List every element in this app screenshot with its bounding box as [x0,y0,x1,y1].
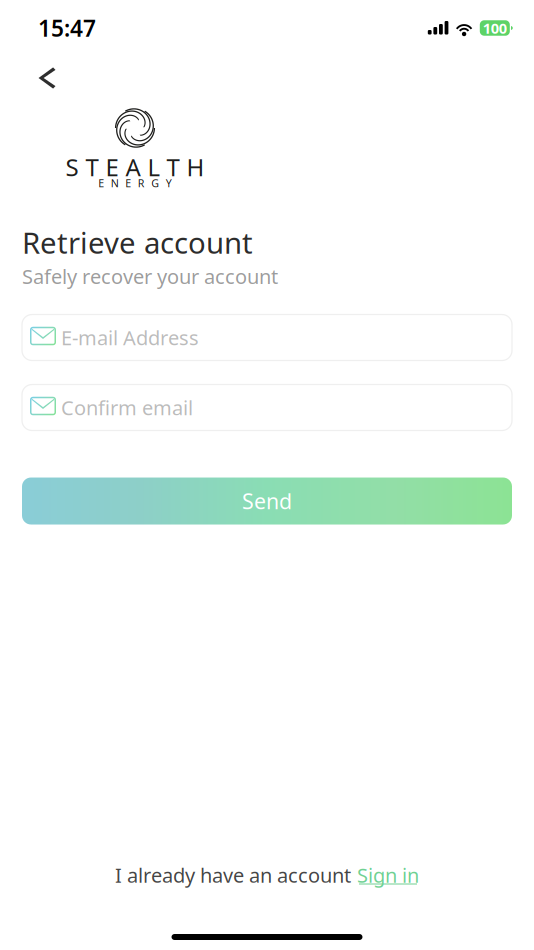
staticText: Send [242,487,292,515]
staticText: Safely recover your account [22,263,278,290]
button[interactable]: Send [22,477,512,524]
staticText: Confirm email [61,394,193,421]
staticText: Sign in [357,862,419,888]
staticText: Retrieve account [22,223,253,262]
staticText: 15:47 [38,13,96,43]
staticText: ENERGY [98,176,172,190]
button[interactable]: Back [27,61,67,95]
staticText: STEALTH [65,151,204,183]
button[interactable]: I already have an account [115,863,419,887]
staticText: E-mail Address [61,324,199,351]
staticText: 100 [483,18,507,38]
staticText: I already have an account [115,862,351,888]
